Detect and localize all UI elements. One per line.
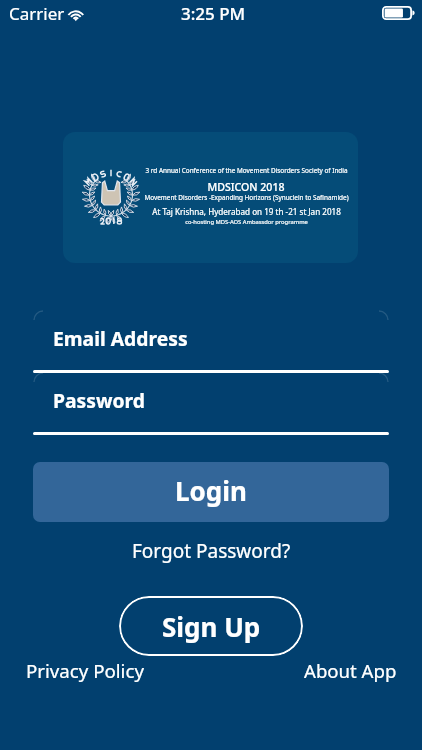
staticText: Password [53, 387, 145, 413]
staticText: Login [175, 473, 247, 508]
staticText: About App [304, 658, 397, 683]
button[interactable]: Sign Up [119, 596, 303, 656]
staticText: Movement Disorders -Expanding Horizons (… [144, 193, 349, 202]
staticText: co-hosting MDS-AOS Ambassdor programme [185, 218, 308, 226]
staticText: Forgot Password? [132, 538, 291, 564]
staticText: 3 rd Annual Conference of the Movement D… [145, 166, 348, 175]
staticText: Sign Up [162, 609, 261, 644]
button[interactable]: Email Address [33, 310, 389, 372]
staticText: Privacy Policy [26, 658, 144, 683]
staticText: Carrier [9, 2, 65, 25]
button[interactable]: Forgot Password? [111, 536, 311, 566]
staticText: At Taj Krishna, Hyderabad on 19 th -21 s… [152, 206, 341, 217]
staticText: Email Address [53, 325, 188, 351]
button[interactable]: Privacy Policy [26, 657, 144, 683]
button[interactable]: Password [33, 372, 389, 434]
staticText: MDSICON 2018 [207, 180, 285, 194]
staticText: 3:25 PM [181, 2, 246, 25]
button[interactable]: Login [33, 462, 389, 522]
button[interactable]: About App [304, 657, 397, 683]
